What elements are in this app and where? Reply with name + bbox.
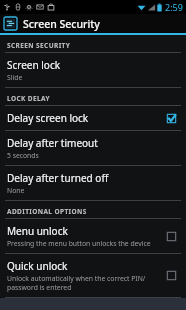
- button[interactable]: Screen lock: [0, 53, 186, 88]
- staticText: Slide: [7, 73, 23, 82]
- staticText: Quick unlock: [7, 259, 68, 273]
- staticText: 2:59: [165, 1, 183, 13]
- staticText: Delay screen lock: [7, 111, 89, 125]
- staticText: SCREEN SECURITY: [7, 41, 71, 50]
- other: Delay screen lock: [166, 113, 177, 124]
- staticText: ADDITIONAL OPTIONS: [7, 207, 87, 216]
- other: Quick unlock: [166, 270, 177, 281]
- staticText: 5 seconds: [7, 151, 39, 160]
- staticText: Screen lock: [7, 58, 61, 72]
- button[interactable]: Delay after timeout: [0, 131, 186, 166]
- staticText: None: [7, 186, 25, 195]
- staticText: Screen Security: [23, 17, 100, 31]
- staticText: Unlock automatically when the correct PI…: [7, 274, 160, 292]
- button[interactable]: Delay screen lock: [0, 106, 186, 131]
- staticText: Delay after turned off: [7, 171, 109, 185]
- staticText: Pressing the menu button unlocks the dev…: [7, 239, 151, 248]
- button[interactable]: Quick unlock: [0, 254, 186, 298]
- button[interactable]: Menu unlock: [0, 219, 186, 254]
- staticText: Menu unlock: [7, 224, 68, 238]
- button[interactable]: Screen Security: [0, 14, 186, 33]
- staticText: Delay after timeout: [7, 136, 98, 150]
- other: Menu unlock: [166, 231, 177, 242]
- staticText: LOCK DELAY: [7, 94, 51, 103]
- button[interactable]: Delay after turned off: [0, 166, 186, 201]
